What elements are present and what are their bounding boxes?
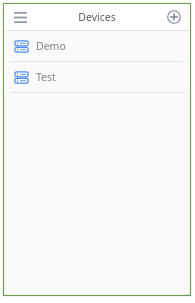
button[interactable]: Open navigation menu [9,6,31,28]
staticText: Test [36,70,56,84]
button[interactable]: Test [4,62,190,92]
button[interactable]: Demo [4,31,190,61]
staticText: Demo [36,39,66,53]
button[interactable]: Add device [164,7,184,27]
staticText: Devices [78,10,116,24]
